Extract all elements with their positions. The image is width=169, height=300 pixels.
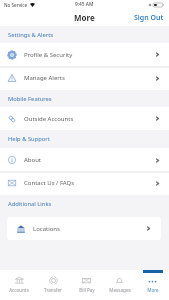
- staticText: Sign Out: [134, 13, 164, 23]
- button[interactable]: Outside Accounts: [0, 107, 169, 130]
- staticText: Contact Us / FAQs: [24, 179, 75, 187]
- button[interactable]: Contact Us / FAQs: [0, 171, 169, 195]
- staticText: Accounts: [9, 287, 29, 293]
- staticText: Manage Alerts: [24, 74, 65, 82]
- button[interactable]: Accounts: [2, 270, 36, 300]
- staticText: More: [74, 12, 95, 23]
- staticText: About: [24, 156, 42, 164]
- button[interactable]: Locations: [7, 217, 161, 240]
- staticText: More: [147, 287, 159, 293]
- staticText: Profile & Security: [24, 51, 73, 59]
- staticText: Locations: [33, 225, 60, 233]
- button[interactable]: Profile & Security: [0, 43, 169, 66]
- staticText: Help & Support: [8, 135, 50, 143]
- staticText: Settings & Alerts: [8, 31, 54, 39]
- button[interactable]: Messages: [103, 270, 136, 300]
- staticText: Messages: [109, 287, 131, 293]
- staticText: Transfer: [44, 287, 62, 293]
- button[interactable]: Bill Pay: [70, 270, 103, 300]
- button[interactable]: About: [0, 148, 169, 172]
- button[interactable]: Manage Alerts: [0, 66, 169, 90]
- staticText: Additional Links: [8, 200, 52, 208]
- staticText: 9:45 AM: [75, 1, 94, 8]
- staticText: No Service: [4, 2, 28, 8]
- staticText: Bill Pay: [79, 287, 95, 293]
- button[interactable]: Transfer: [36, 270, 70, 300]
- staticText: Outside Accounts: [24, 115, 74, 123]
- staticText: Mobile Features: [8, 95, 52, 103]
- button[interactable]: Sign Out: [128, 10, 169, 26]
- button[interactable]: More: [136, 270, 169, 300]
